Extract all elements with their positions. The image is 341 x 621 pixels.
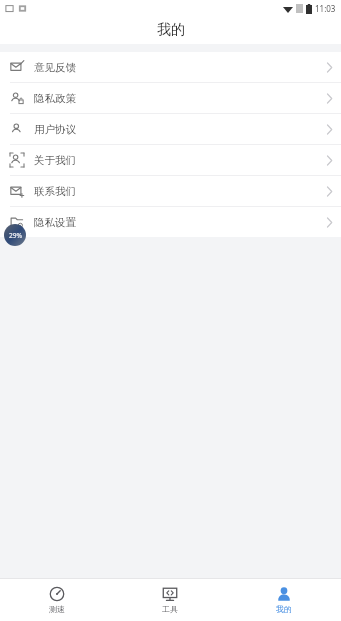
staticText: 29% xyxy=(9,231,22,240)
staticText: 11:03 xyxy=(315,3,336,14)
staticText: 隐私政策 xyxy=(34,92,76,105)
staticText: 我的 xyxy=(157,21,185,39)
staticText: 测速 xyxy=(49,604,65,614)
button[interactable]: 隐私设置 xyxy=(0,207,341,237)
button[interactable]: 我的 xyxy=(227,579,341,621)
staticText: 关于我们 xyxy=(34,154,76,167)
button[interactable]: 工具 xyxy=(113,579,227,621)
button[interactable]: 用户协议 xyxy=(0,114,341,144)
button[interactable]: 关于我们 xyxy=(0,145,341,175)
button[interactable]: 隐私政策 xyxy=(0,83,341,113)
staticText: 联系我们 xyxy=(34,185,76,198)
button[interactable]: 意见反馈 xyxy=(0,52,341,82)
staticText: 用户协议 xyxy=(34,123,76,136)
button[interactable]: 测速 xyxy=(0,579,113,621)
staticText: 意见反馈 xyxy=(34,61,76,74)
button[interactable]: Download progress 29 percent xyxy=(4,224,26,246)
staticText: 我的 xyxy=(276,604,292,614)
button[interactable]: 联系我们 xyxy=(0,176,341,206)
staticText: 隐私设置 xyxy=(34,216,76,229)
staticText: 工具 xyxy=(162,604,178,614)
